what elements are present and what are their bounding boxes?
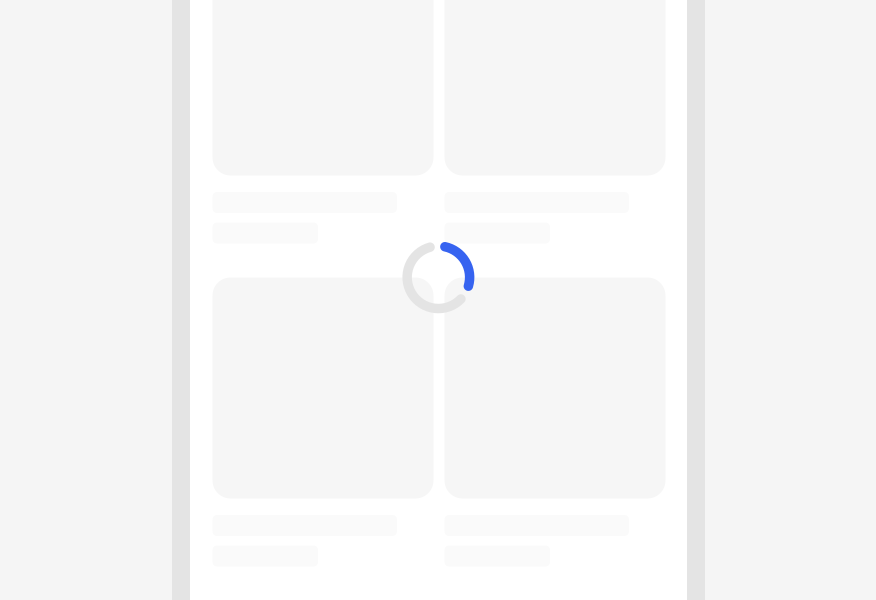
button[interactable]: Loading item [212,0,433,243]
button[interactable]: Loading item [444,277,665,566]
button[interactable]: Loading item [444,0,665,243]
button[interactable]: Loading item [212,277,433,566]
